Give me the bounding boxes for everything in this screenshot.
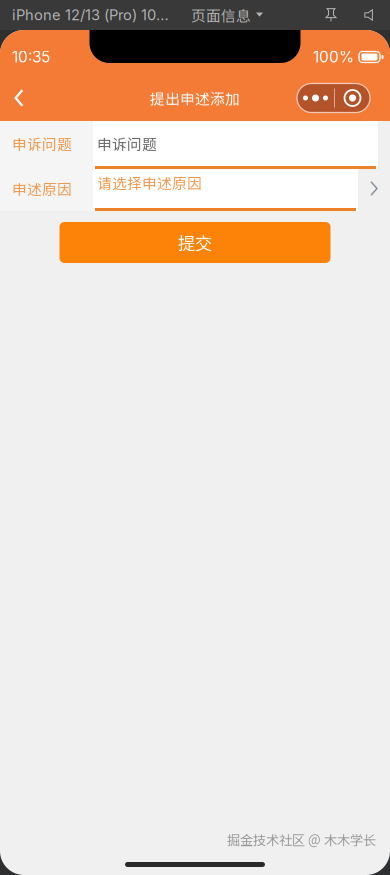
button[interactable]: 申诉问题 [0, 121, 390, 166]
staticText: iPhone 12/13 (Pro) 10… [12, 6, 169, 24]
button[interactable]: 提交 [59, 222, 330, 263]
staticText: 提出申述添加 [150, 87, 240, 109]
staticText: 掘金技术社区 @ 木木学长 [227, 830, 376, 849]
button[interactable]: Back [0, 75, 38, 121]
button[interactable]: 选择申述原因 [0, 169, 390, 208]
button[interactable]: 页面信息 [191, 4, 263, 26]
button[interactable]: Pin [318, 2, 344, 28]
staticText: 申诉问题 [12, 133, 72, 154]
staticText: 请选择申述原因 [97, 172, 202, 193]
button[interactable]: More options [297, 83, 370, 112]
staticText: 申诉问题 [97, 133, 157, 154]
staticText: 100% [313, 48, 354, 66]
staticText: 申述原因 [12, 178, 72, 199]
staticText: 10:35 [12, 48, 50, 66]
staticText: 提交 [178, 230, 212, 255]
staticText: 页面信息 [191, 4, 251, 26]
button[interactable]: Sound [356, 2, 382, 28]
